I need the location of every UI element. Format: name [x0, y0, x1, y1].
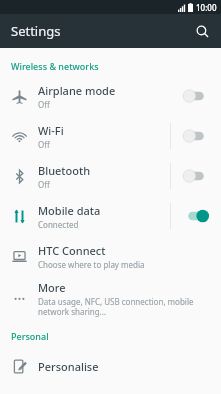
button[interactable]: Personalise	[0, 346, 221, 386]
button[interactable]: More	[0, 276, 221, 320]
button[interactable]: Wi-Fi switch	[171, 116, 221, 156]
button[interactable]: Bluetooth	[0, 156, 221, 196]
staticText: Personalise	[38, 359, 99, 374]
button[interactable]: Wi-Fi	[0, 116, 221, 156]
staticText: Airplane mode	[38, 83, 116, 98]
button[interactable]: Search	[188, 17, 216, 45]
staticText: More	[38, 280, 66, 295]
button[interactable]: Mobile data	[0, 196, 221, 236]
staticText: Personal	[11, 330, 49, 342]
button[interactable]: Airplane mode switch	[171, 76, 221, 116]
button[interactable]: Bluetooth switch	[171, 156, 221, 196]
staticText: Data usage, NFC, USB connection, mobile …	[38, 296, 207, 317]
staticText: Off	[38, 99, 50, 110]
staticText: Bluetooth	[38, 163, 91, 178]
staticText: Off	[38, 139, 50, 150]
button[interactable]: Mobile data switch	[171, 196, 221, 236]
staticText: Off	[38, 179, 50, 190]
staticText: Choose where to play media	[38, 259, 145, 270]
staticText: 10:00	[196, 2, 217, 13]
staticText: Settings	[11, 22, 61, 40]
staticText: Mobile data	[38, 203, 101, 218]
staticText: Connected	[38, 219, 79, 230]
staticText: Wireless & networks	[11, 60, 99, 72]
button[interactable]: Airplane mode	[0, 76, 221, 116]
staticText: Wi-Fi	[38, 123, 64, 138]
button[interactable]: HTC Connect	[0, 236, 221, 276]
staticText: HTC Connect	[38, 243, 106, 258]
